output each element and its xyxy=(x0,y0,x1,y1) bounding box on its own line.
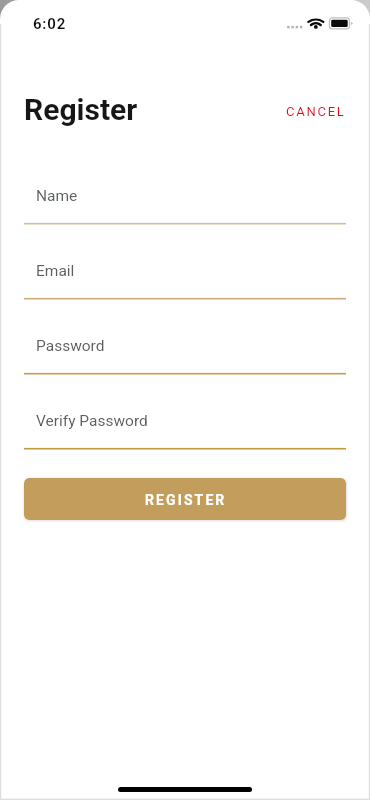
button[interactable]: Verify Password xyxy=(24,374,346,449)
other: Status icons xyxy=(0,0,370,44)
button[interactable]: CANCEL xyxy=(284,102,348,121)
staticText: 6:02 xyxy=(33,15,66,33)
button[interactable]: Register xyxy=(24,92,138,127)
staticText: CANCEL xyxy=(286,104,346,119)
button[interactable]: Name xyxy=(24,149,346,224)
staticText: REGISTER xyxy=(145,492,227,508)
staticText: Verify Password xyxy=(36,412,148,430)
button[interactable]: REGISTER xyxy=(24,478,346,520)
button[interactable]: Password xyxy=(24,299,346,374)
staticText: Password xyxy=(36,337,105,355)
staticText: Email xyxy=(36,262,75,280)
button[interactable]: Email xyxy=(24,224,346,299)
staticText: Name xyxy=(36,187,78,205)
staticText: Register xyxy=(24,92,138,127)
